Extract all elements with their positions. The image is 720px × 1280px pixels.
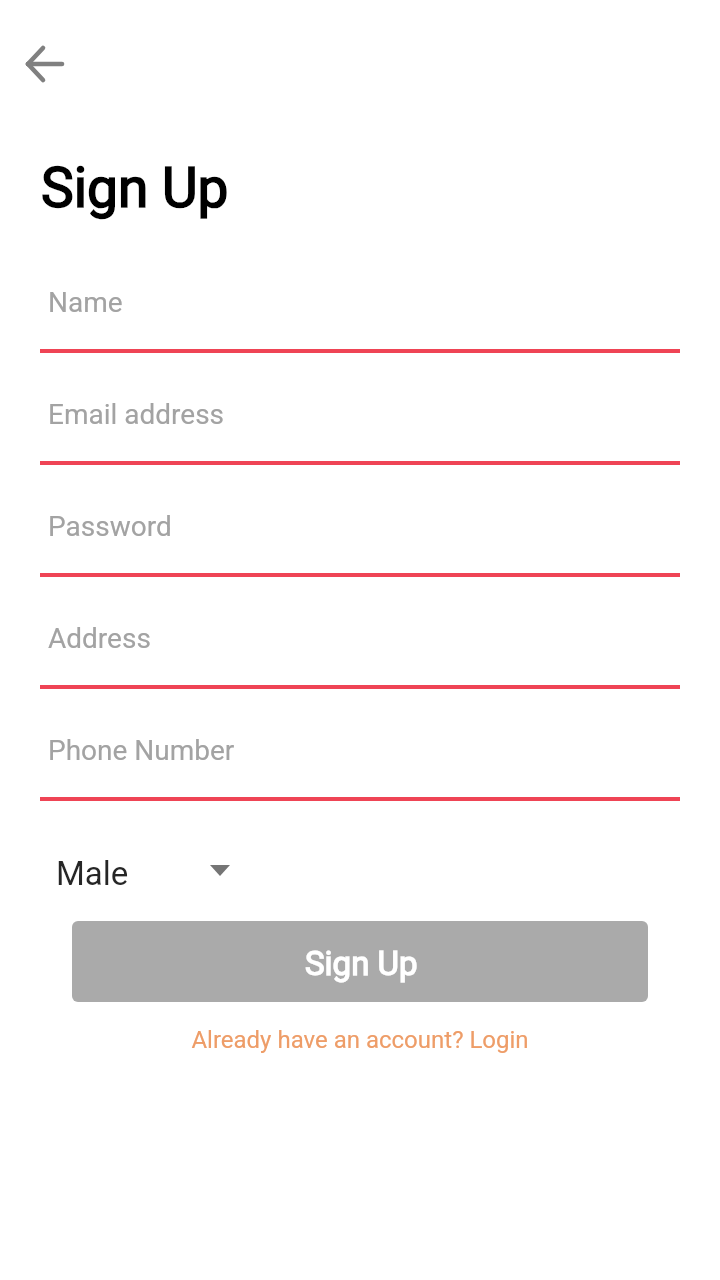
button[interactable]: Address xyxy=(40,595,680,675)
staticText: Sign Up xyxy=(41,156,229,220)
button[interactable]: Back xyxy=(13,40,77,88)
button[interactable]: Password xyxy=(40,483,680,563)
staticText: Password xyxy=(48,510,172,543)
button[interactable]: Name xyxy=(40,259,680,339)
staticText: Address xyxy=(48,622,151,655)
staticText: Sign Up xyxy=(305,944,418,983)
button[interactable]: Phone Number xyxy=(40,707,680,787)
button[interactable]: Sign Up xyxy=(72,921,648,1002)
button[interactable]: Male xyxy=(50,849,230,897)
staticText: Male xyxy=(56,854,129,893)
staticText: Email address xyxy=(48,398,225,431)
button[interactable]: Email address xyxy=(40,371,680,451)
staticText: Already have an account? Login xyxy=(191,1026,529,1054)
staticText: Phone Number xyxy=(48,734,235,767)
button[interactable]: Already have an account? Login xyxy=(0,1016,720,1064)
staticText: Name xyxy=(48,286,123,319)
